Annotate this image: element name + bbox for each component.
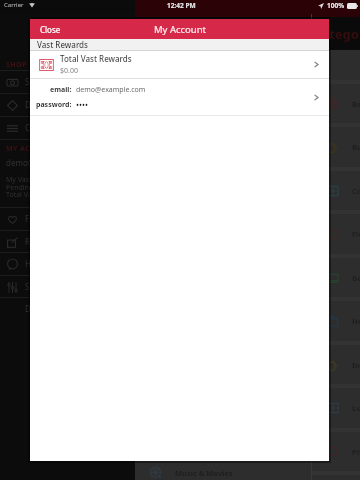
staticText: MY ACCOUNT <box>6 144 57 154</box>
staticText: demo@example.com <box>6 157 86 168</box>
staticText: Total Vast Rewards <box>60 53 132 64</box>
button[interactable]: Music & Movies <box>135 453 311 480</box>
button[interactable]: Baby <box>312 84 360 124</box>
staticText: Favorites <box>25 213 60 224</box>
staticText: My Vast Rewards <box>6 175 62 185</box>
button[interactable]: Categories <box>0 116 135 139</box>
button[interactable]: Computers <box>312 171 360 211</box>
staticText: Industrial <box>352 360 360 370</box>
staticText: Carrier <box>4 1 24 9</box>
button[interactable]: Flooring <box>312 214 360 254</box>
staticText: Done <box>25 303 46 314</box>
button[interactable]: Close <box>30 20 71 39</box>
staticText: Close <box>40 24 61 35</box>
button[interactable]: Industrial <box>312 345 360 385</box>
staticText: Categories <box>25 122 66 133</box>
staticText: demo@example.com <box>76 85 146 95</box>
staticText: Building Supplies <box>352 142 360 152</box>
staticText: Help <box>25 258 43 269</box>
button[interactable]: email: <box>30 79 329 115</box>
staticText: Garden <box>352 273 360 283</box>
staticText: Pending Rewards <box>6 183 64 193</box>
staticText: Categories <box>313 25 360 43</box>
staticText: •••• <box>76 99 89 110</box>
button[interactable]: Phones <box>312 432 360 472</box>
staticText: SHOP <box>6 60 27 70</box>
staticText: Home <box>352 316 360 326</box>
staticText: Deals <box>25 99 46 110</box>
staticText: Phones <box>352 447 360 457</box>
staticText: Scan <box>25 76 43 87</box>
button[interactable]: Help <box>0 252 135 275</box>
staticText: Flooring <box>352 229 360 239</box>
button[interactable]: Scan <box>0 70 135 93</box>
button[interactable]: Favorites <box>0 207 135 230</box>
button[interactable]: Garden <box>312 258 360 298</box>
button[interactable]: Done <box>0 297 135 320</box>
button[interactable]: Building Supplies <box>312 127 360 167</box>
staticText: Refer a friend <box>25 236 77 247</box>
staticText: password: <box>36 100 72 110</box>
button[interactable]: Appliances <box>135 105 311 145</box>
staticText: My Account <box>154 23 207 36</box>
button[interactable]: Refer a friend <box>0 230 135 253</box>
staticText: 100% <box>327 1 345 10</box>
staticText: Settings <box>25 281 56 292</box>
button[interactable]: Home <box>312 301 360 341</box>
staticText: Vast Rewards <box>37 39 88 50</box>
button[interactable]: Rewards <box>30 51 329 78</box>
other: Rewards <box>39 59 54 71</box>
staticText: Total Vast Rewards <box>6 190 68 200</box>
button[interactable]: Settings <box>0 275 135 298</box>
staticText: Computers <box>352 186 360 196</box>
staticText: Search products <box>295 3 356 14</box>
staticText: 12:42 PM <box>167 1 196 10</box>
button[interactable]: Deals <box>0 93 135 116</box>
staticText: Music & Movies <box>175 468 233 478</box>
staticText: Baby <box>352 99 360 109</box>
button[interactable]: Luggage <box>312 388 360 428</box>
staticText: Luggage <box>352 403 360 413</box>
staticText: email: <box>50 85 72 95</box>
staticText: $0.00 <box>60 66 78 76</box>
